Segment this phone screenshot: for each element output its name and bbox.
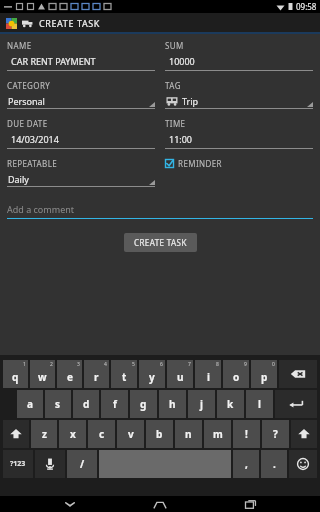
button[interactable]: Hide keyboard	[50, 496, 90, 512]
staticText: c	[99, 427, 105, 441]
button[interactable]: DUE DATE	[7, 118, 155, 149]
staticText: ?	[273, 427, 278, 441]
button[interactable]: 7	[167, 360, 193, 388]
button[interactable]: j	[188, 390, 215, 418]
button[interactable]: TIME	[165, 118, 313, 149]
staticText: 8	[216, 361, 219, 368]
button[interactable]: REMINDER	[165, 158, 222, 169]
staticText: m	[213, 427, 223, 441]
staticText: g	[140, 397, 147, 411]
button[interactable]: Recent apps	[230, 496, 270, 512]
button[interactable]: ?	[262, 420, 289, 448]
button[interactable]: 3	[57, 360, 82, 388]
staticText: TAG	[165, 80, 181, 91]
button[interactable]: c	[88, 420, 115, 448]
button[interactable]: !	[233, 420, 260, 448]
staticText: r	[94, 370, 99, 384]
button[interactable]: 9	[223, 360, 249, 388]
staticText: o	[233, 370, 240, 384]
staticText: s	[55, 397, 61, 411]
button[interactable]: 6	[139, 360, 165, 388]
button[interactable]: CATEGORY	[7, 80, 155, 109]
button[interactable]: Home	[140, 496, 180, 512]
staticText: Daily	[8, 173, 29, 185]
button[interactable]: l	[246, 390, 273, 418]
button[interactable]: 5	[111, 360, 137, 388]
staticText: NAME	[7, 40, 32, 51]
staticText: d	[83, 397, 90, 411]
staticText: h	[169, 397, 176, 411]
button[interactable]: h	[159, 390, 186, 418]
button[interactable]: n	[175, 420, 202, 448]
staticText: p	[261, 370, 268, 384]
staticText: REMINDER	[178, 158, 222, 169]
staticText: /	[80, 457, 85, 471]
staticText: i	[207, 370, 210, 384]
button[interactable]: k	[217, 390, 244, 418]
button[interactable]: 4	[84, 360, 109, 388]
staticText: ?123	[10, 459, 26, 469]
button[interactable]: Voice input	[35, 450, 65, 478]
staticText: n	[185, 427, 192, 441]
staticText: CATEGORY	[7, 80, 51, 91]
button[interactable]: Backspace	[279, 360, 317, 388]
staticText: j	[200, 397, 203, 411]
staticText: 4	[104, 361, 107, 368]
button[interactable]: v	[117, 420, 144, 448]
button[interactable]: TAG	[165, 80, 313, 109]
button[interactable]: s	[45, 390, 71, 418]
button[interactable]: a	[17, 390, 43, 418]
button[interactable]: REPEATABLE	[7, 158, 155, 187]
button[interactable]: NAME	[7, 40, 155, 71]
button[interactable]: Shift	[291, 420, 317, 448]
button[interactable]: z	[31, 420, 57, 448]
button[interactable]: Shift	[3, 420, 29, 448]
button[interactable]: g	[130, 390, 157, 418]
staticText: z	[42, 427, 47, 441]
staticText: a	[27, 397, 33, 411]
button[interactable]: /	[67, 450, 97, 478]
staticText: 14/03/2014	[11, 133, 59, 145]
staticText: 2	[50, 361, 53, 368]
button[interactable]: Add a comment	[7, 203, 313, 219]
button[interactable]: f	[101, 390, 128, 418]
staticText: !	[245, 427, 248, 441]
staticText: e	[67, 370, 73, 384]
button[interactable]: Enter	[275, 390, 317, 418]
button[interactable]: 0	[251, 360, 277, 388]
button[interactable]: 2	[30, 360, 55, 388]
button[interactable]: Navigate up	[2, 14, 20, 32]
staticText: CREATE TASK	[134, 237, 187, 248]
staticText: f	[113, 397, 117, 411]
button[interactable]: ?123	[3, 450, 33, 478]
button[interactable]: 1	[3, 360, 28, 388]
staticText: v	[128, 427, 134, 441]
button[interactable]: 8	[195, 360, 221, 388]
staticText: 7	[188, 361, 191, 368]
button[interactable]: Emoji	[289, 450, 317, 478]
staticText: 5	[132, 361, 135, 368]
staticText: x	[70, 427, 76, 441]
staticText: CAR RENT PAYMENT	[11, 55, 96, 67]
staticText: .	[273, 457, 276, 471]
staticText: q	[12, 370, 19, 384]
staticText: 11:00	[169, 133, 193, 145]
button[interactable]: m	[204, 420, 231, 448]
staticText: ,	[245, 457, 248, 471]
staticText: Add a comment	[7, 203, 75, 215]
button[interactable]: b	[146, 420, 173, 448]
button[interactable]: x	[59, 420, 86, 448]
staticText: w	[38, 370, 47, 384]
button[interactable]: CREATE TASK	[124, 233, 197, 252]
staticText: DUE DATE	[7, 118, 48, 129]
staticText: SUM	[165, 40, 184, 51]
staticText: u	[177, 370, 184, 384]
staticText: k	[227, 397, 234, 411]
staticText: TIME	[165, 118, 186, 129]
button[interactable]: SUM	[165, 40, 313, 71]
button[interactable]: d	[73, 390, 99, 418]
staticText: 0	[272, 361, 275, 368]
button[interactable]: ,	[233, 450, 259, 478]
button[interactable]: .	[261, 450, 287, 478]
